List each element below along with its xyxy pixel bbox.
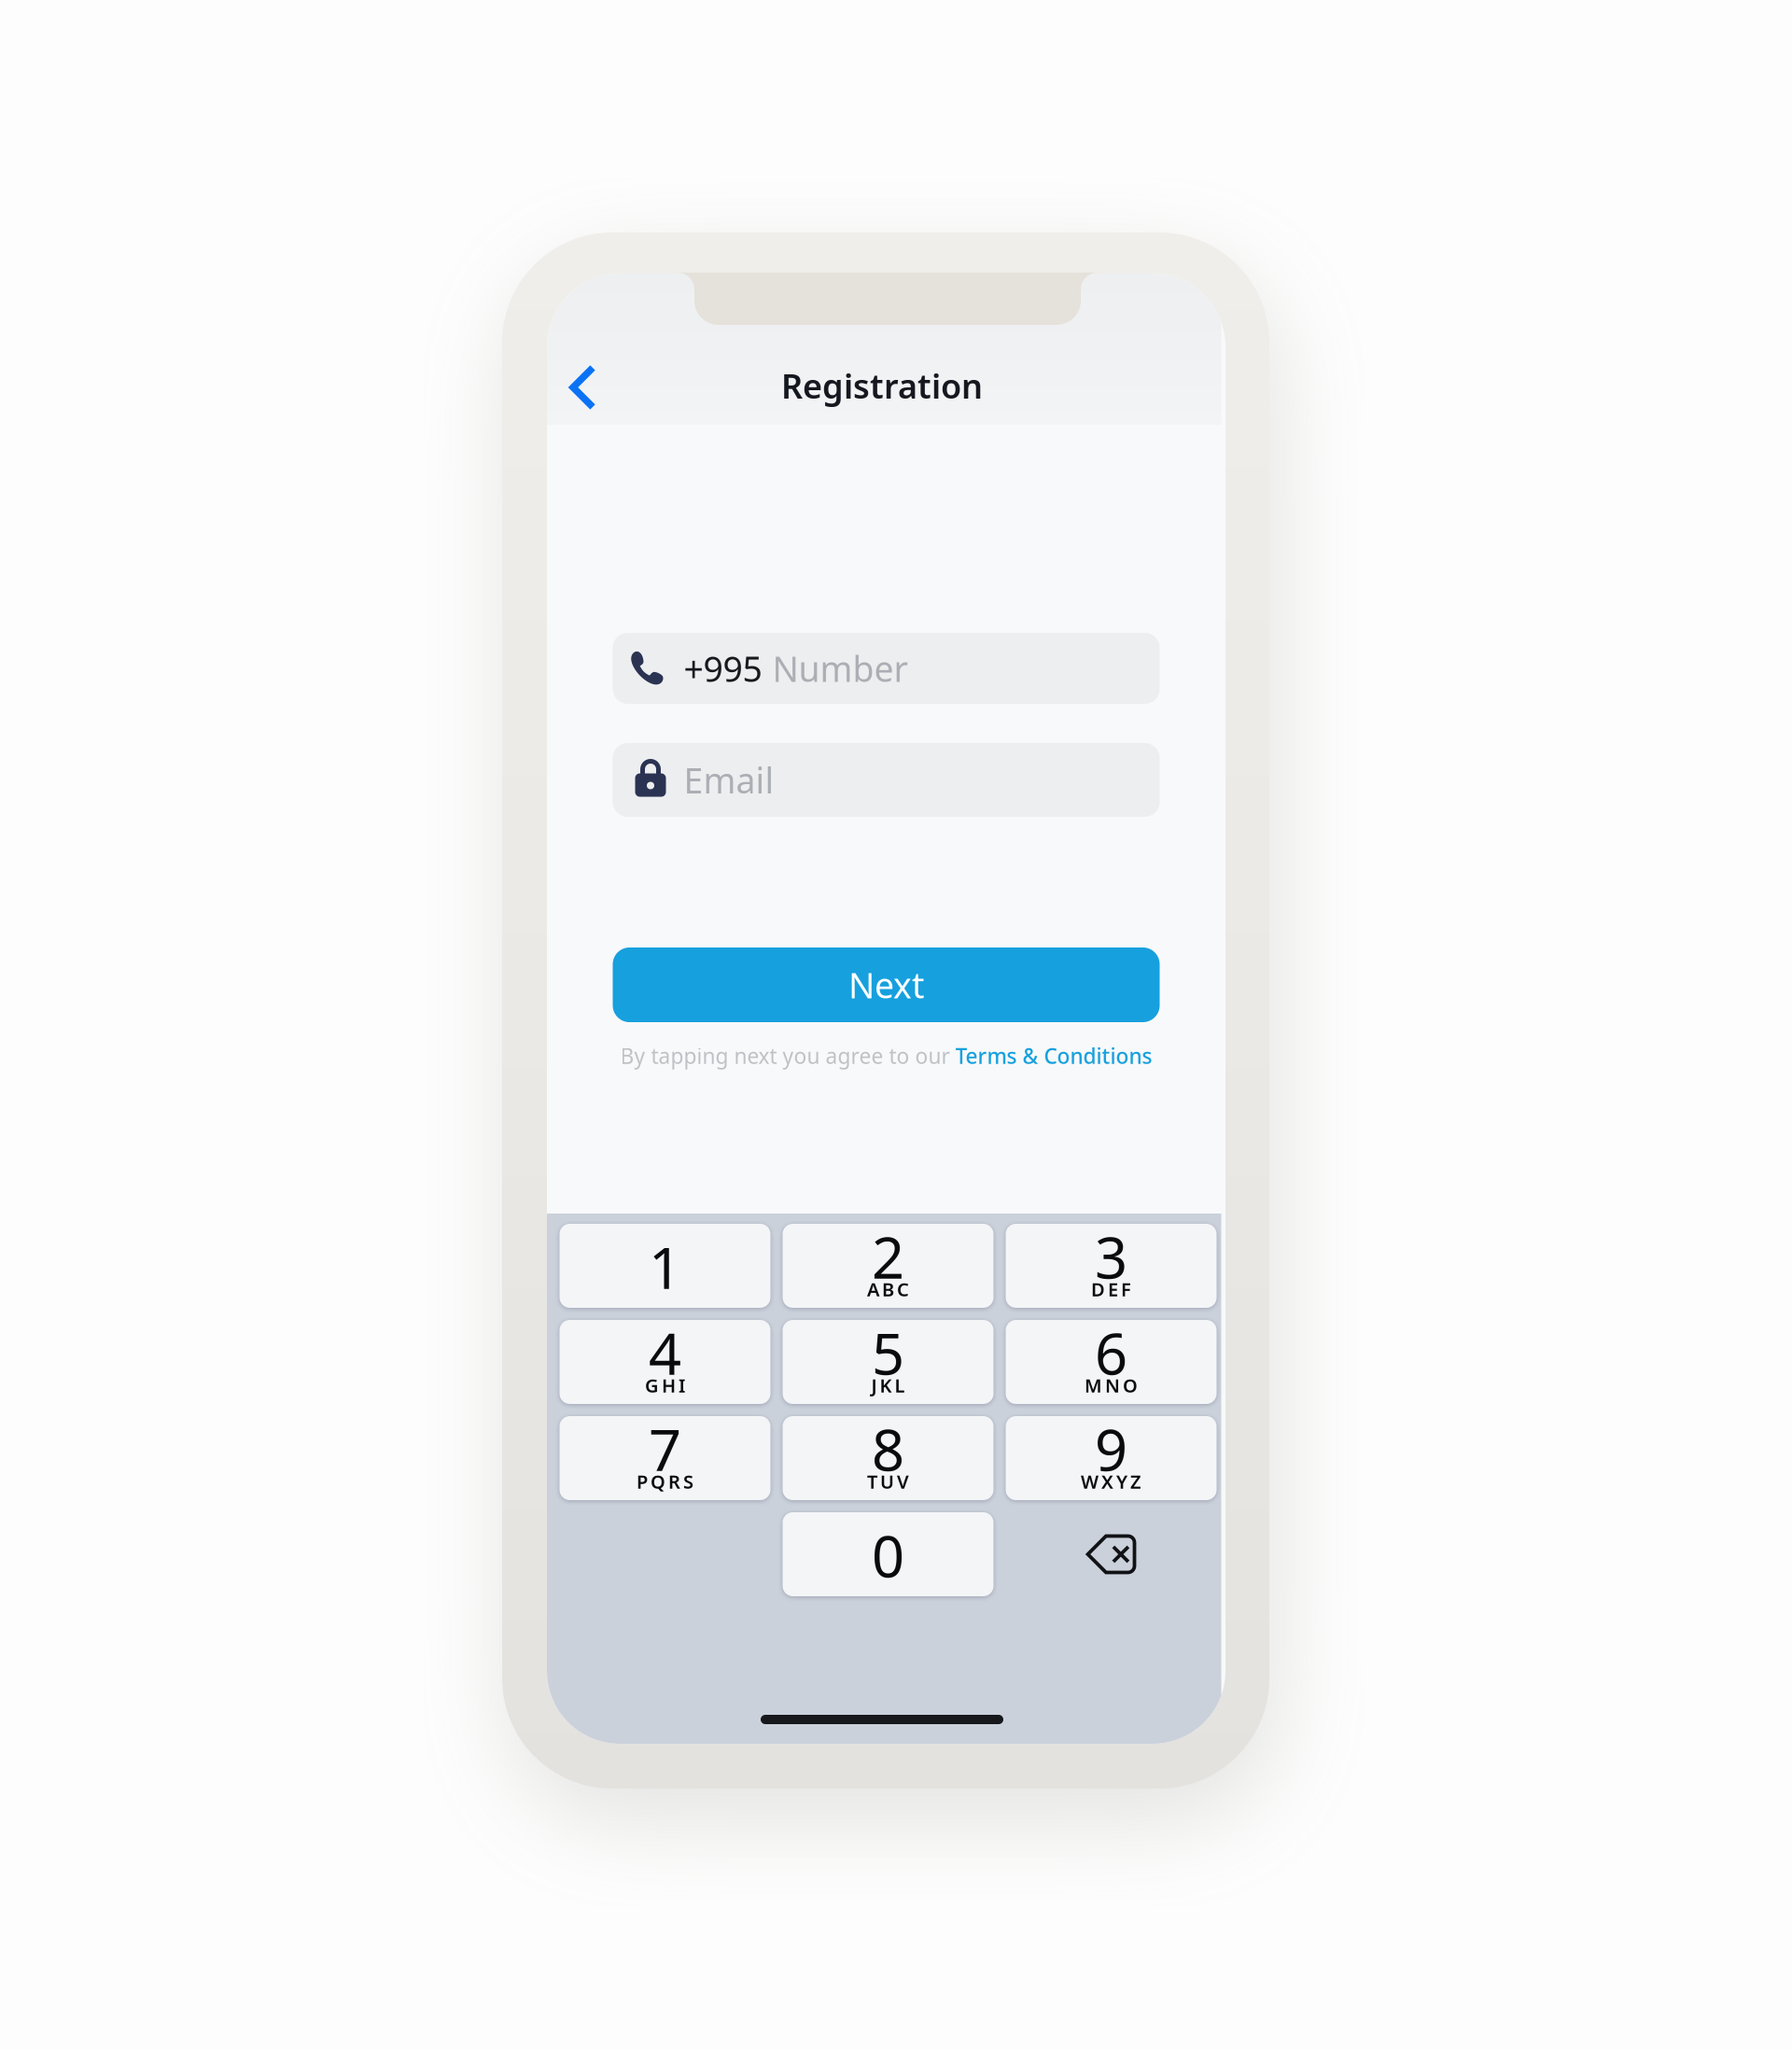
button[interactable]: Email [613, 743, 1160, 817]
button[interactable]: 2 [783, 1224, 994, 1308]
staticText: D E F [1091, 1277, 1131, 1302]
staticText: T U V [867, 1469, 909, 1494]
button[interactable]: 9 [1006, 1416, 1217, 1500]
staticText: M N O [1085, 1373, 1138, 1398]
button[interactable]: 6 [1006, 1320, 1217, 1404]
staticText: 0 [872, 1517, 904, 1593]
button[interactable]: Back [543, 350, 623, 425]
staticText: 4 [649, 1315, 681, 1391]
button[interactable]: 5 [783, 1320, 994, 1404]
staticText: 8 [872, 1411, 904, 1487]
staticText: Number [772, 645, 908, 692]
staticText: 2 [872, 1218, 904, 1294]
button[interactable]: 0 [783, 1512, 994, 1596]
button[interactable]: 3 [1006, 1224, 1217, 1308]
staticText: 9 [1095, 1411, 1127, 1487]
staticText: 5 [872, 1315, 904, 1391]
staticText: 1 [649, 1229, 681, 1305]
button[interactable]: 8 [783, 1416, 994, 1500]
staticText: P Q R S [637, 1469, 693, 1494]
button[interactable]: 1 [560, 1224, 770, 1308]
staticText: 3 [1095, 1218, 1127, 1294]
staticText: Next [848, 962, 924, 1008]
staticText: G H I [645, 1373, 685, 1398]
staticText: Terms & Conditions [955, 1042, 1152, 1070]
staticText: J K L [871, 1373, 905, 1398]
button[interactable]: Delete [1006, 1512, 1217, 1596]
button[interactable]: +995 [613, 633, 1160, 704]
button[interactable]: 4 [560, 1320, 770, 1404]
staticText: W X Y Z [1081, 1469, 1141, 1494]
staticText: 7 [649, 1411, 681, 1487]
button[interactable]: 7 [560, 1416, 770, 1500]
staticText: By tapping next you agree to our [620, 1042, 955, 1070]
staticText: Email [684, 757, 774, 803]
staticText: +995 [684, 645, 762, 692]
staticText: 6 [1095, 1315, 1127, 1391]
staticText: Registration [781, 363, 983, 408]
button[interactable]: Next [613, 947, 1160, 1022]
staticText: A B C [867, 1277, 909, 1302]
button[interactable]: By tapping next you agree to our [613, 1040, 1160, 1072]
